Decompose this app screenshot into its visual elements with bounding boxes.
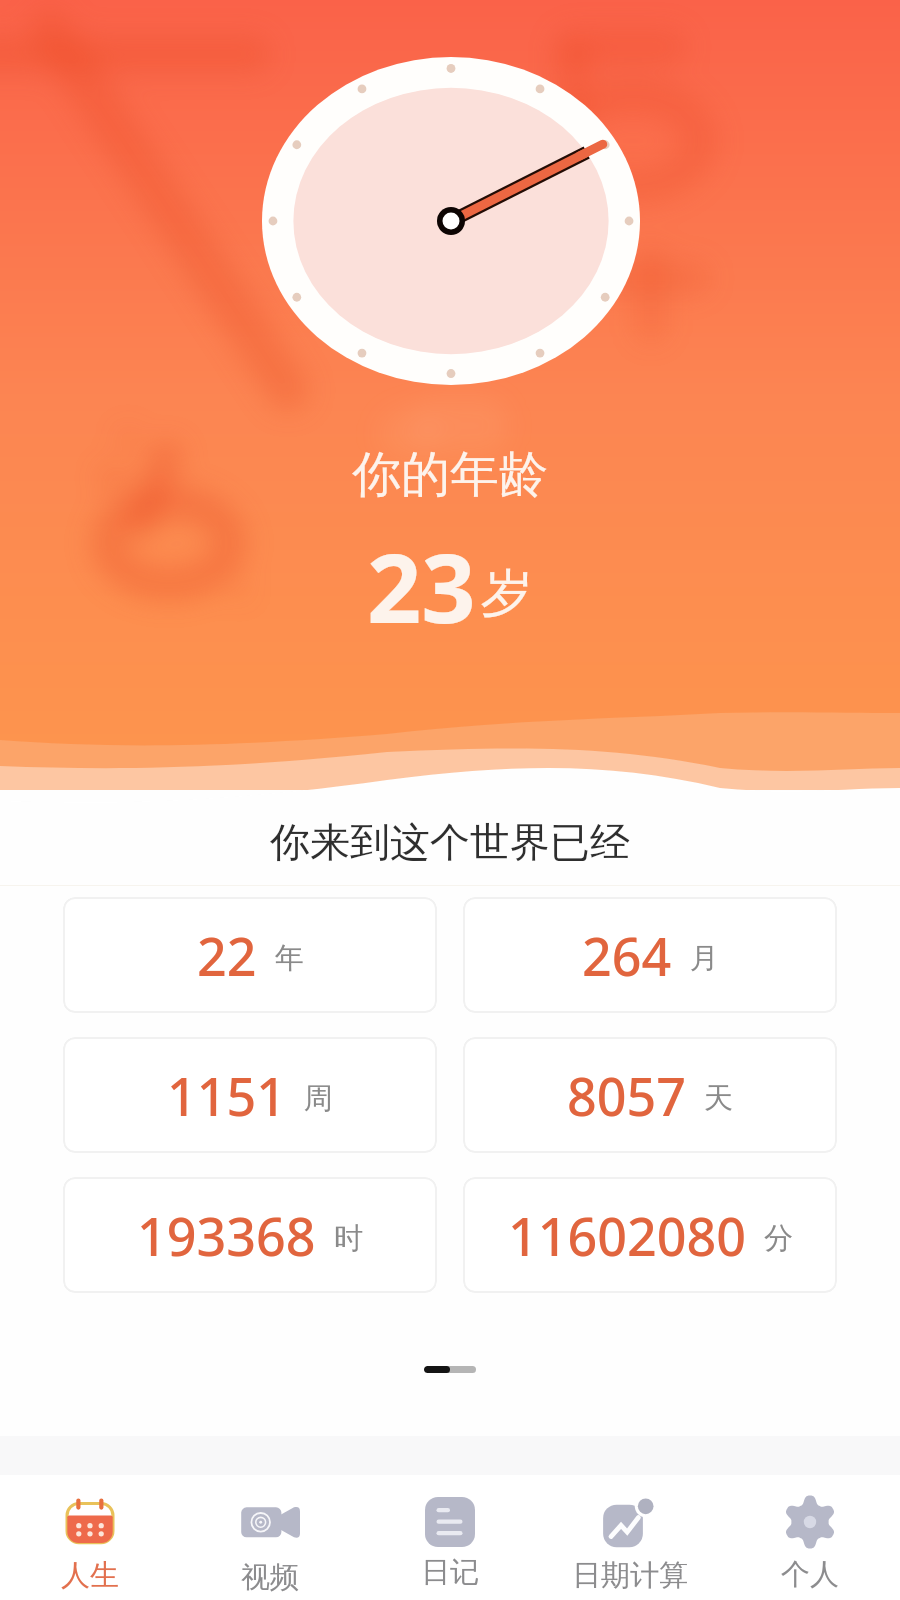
button[interactable]: 8057	[463, 1037, 837, 1153]
button[interactable]: 264	[463, 897, 837, 1013]
staticText: 193368	[137, 1200, 316, 1271]
staticText: 岁	[481, 561, 533, 627]
staticText: 你的年龄	[352, 444, 548, 506]
button[interactable]: Video	[180, 1475, 360, 1600]
button[interactable]: Life	[0, 1477, 180, 1598]
staticText: 年	[275, 940, 304, 977]
staticText: 月	[690, 940, 719, 977]
staticText: 8057	[567, 1060, 686, 1131]
staticText: 23	[367, 521, 476, 650]
staticText: 分	[764, 1220, 793, 1257]
staticText: 个人	[781, 1556, 839, 1593]
staticText: 1151	[167, 1060, 286, 1131]
button[interactable]: Profile	[720, 1478, 900, 1597]
staticText: 你来到这个世界已经	[0, 817, 900, 867]
staticText: 264	[582, 920, 672, 991]
staticText: 日期计算	[572, 1557, 688, 1594]
staticText: 日记	[421, 1554, 479, 1591]
button[interactable]: 22	[63, 897, 437, 1013]
staticText: 11602080	[508, 1200, 746, 1271]
staticText: 周	[304, 1080, 333, 1117]
button[interactable]: 193368	[63, 1177, 437, 1293]
button[interactable]: 1151	[63, 1037, 437, 1153]
button[interactable]: Diary	[360, 1480, 540, 1595]
button[interactable]: Date calculator	[540, 1477, 720, 1598]
staticText: 时	[334, 1220, 363, 1257]
staticText: 人生	[61, 1557, 119, 1594]
staticText: 22	[197, 920, 257, 991]
staticText: 天	[704, 1080, 733, 1117]
button[interactable]: 11602080	[463, 1177, 837, 1293]
staticText: 视频	[241, 1559, 299, 1596]
